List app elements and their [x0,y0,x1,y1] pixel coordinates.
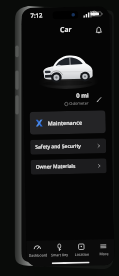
staticText: Smart Key [50,252,68,257]
staticText: Odometer [69,100,89,106]
staticText: Dashboard [28,252,47,258]
staticText: Location [74,252,89,257]
button[interactable]: Safety and Security [30,138,106,155]
staticText: Maintenance [48,119,83,126]
button[interactable]: More [92,239,115,259]
staticText: More [99,251,108,256]
button[interactable]: Maintenance [29,110,106,135]
button[interactable]: Location [70,239,93,259]
button[interactable]: Owner Materials [30,158,107,175]
button[interactable]: Notifications [92,23,105,36]
button[interactable]: Edit odometer [93,93,104,104]
staticText: Owner Materials [36,163,76,171]
staticText: 0 mi [76,91,89,100]
staticText: Car [60,25,72,35]
staticText: 7:12 [30,11,43,20]
button[interactable]: Smart Key [48,240,71,259]
staticText: Safety and Security [35,143,81,151]
button[interactable]: Dashboard [26,240,49,260]
